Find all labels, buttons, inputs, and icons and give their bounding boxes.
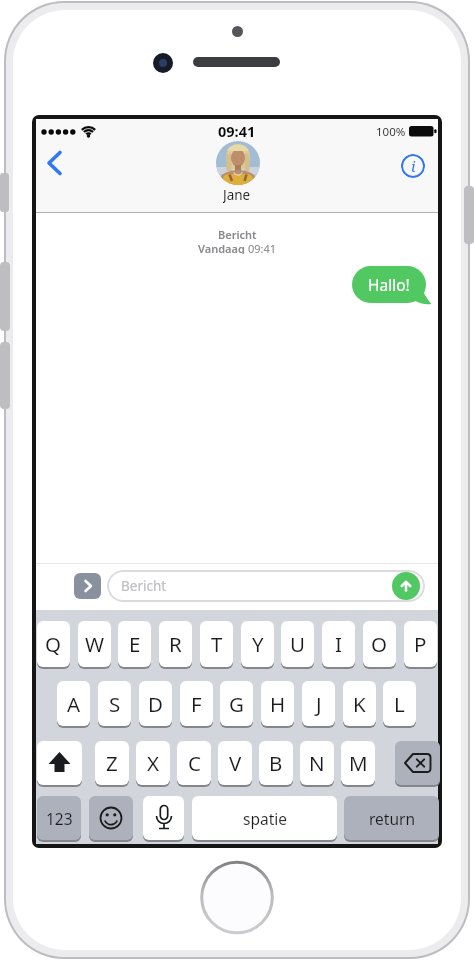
staticText: O <box>371 630 388 658</box>
staticText: U <box>290 630 305 658</box>
button[interactable]: T <box>200 621 233 667</box>
staticText: A <box>67 690 81 718</box>
button[interactable]: P <box>404 621 437 667</box>
staticText: Jane <box>223 186 251 203</box>
staticText: D <box>148 690 163 718</box>
button[interactable]: D <box>139 681 172 726</box>
button[interactable]: N <box>300 741 334 785</box>
staticText: E <box>129 630 141 658</box>
button[interactable]: i <box>401 154 425 178</box>
button[interactable]: M <box>341 741 375 785</box>
staticText: Hallo! <box>368 274 410 295</box>
button[interactable]: G <box>220 681 253 726</box>
staticText: Bericht <box>218 227 257 240</box>
button[interactable]: K <box>343 681 376 726</box>
button[interactable]: H <box>261 681 294 726</box>
staticText: B <box>269 749 283 777</box>
button[interactable] <box>37 741 82 785</box>
staticText: 09:41 <box>248 241 277 254</box>
button[interactable]: Q <box>37 621 70 667</box>
staticText: C <box>188 749 201 777</box>
staticText: 09:41 <box>218 121 256 138</box>
button[interactable] <box>89 796 133 840</box>
button[interactable]: 123 <box>37 796 81 840</box>
button[interactable]: A <box>57 681 90 726</box>
staticText: L <box>394 690 405 718</box>
button[interactable]: I <box>322 621 355 667</box>
staticText: T <box>211 630 223 658</box>
staticText: S <box>109 690 121 718</box>
button[interactable]: return <box>344 796 439 840</box>
staticText: return <box>369 808 415 829</box>
staticText: R <box>169 630 182 658</box>
staticText: N <box>309 749 325 777</box>
staticText: spatie <box>243 808 287 829</box>
staticText: J <box>316 690 322 718</box>
button[interactable]: R <box>159 621 192 667</box>
button[interactable]: F <box>180 681 213 726</box>
staticText: 123 <box>46 808 73 829</box>
staticText: F <box>191 690 202 718</box>
staticText: i <box>411 156 416 176</box>
button[interactable] <box>40 146 68 180</box>
staticText: V <box>229 749 242 777</box>
staticText: Z <box>106 749 118 777</box>
button[interactable]: B <box>259 741 293 785</box>
staticText: I <box>335 630 342 658</box>
staticText: P <box>414 630 427 658</box>
button[interactable]: V <box>218 741 252 785</box>
staticText: M <box>349 749 368 777</box>
button[interactable]: U <box>281 621 314 667</box>
staticText: Q <box>45 630 62 658</box>
button[interactable]: Hallo! <box>352 266 426 303</box>
button[interactable]: W <box>78 621 111 667</box>
staticText: K <box>353 690 366 718</box>
button[interactable] <box>143 796 184 840</box>
button[interactable]: O <box>363 621 396 667</box>
button[interactable]: E <box>118 621 151 667</box>
button[interactable]: Y <box>241 621 274 667</box>
staticText: H <box>270 690 286 718</box>
staticText: X <box>147 749 160 777</box>
staticText: G <box>229 690 244 718</box>
button[interactable]: S <box>98 681 131 726</box>
button[interactable]: C <box>177 741 211 785</box>
button[interactable] <box>216 141 260 185</box>
button[interactable]: L <box>383 681 416 726</box>
staticText: Vandaag <box>198 241 248 254</box>
staticText: Bericht <box>121 577 167 595</box>
button[interactable]: Bericht <box>107 570 425 602</box>
button[interactable] <box>395 741 440 785</box>
staticText: W <box>85 630 105 658</box>
button[interactable] <box>392 572 420 600</box>
button[interactable]: J <box>302 681 335 726</box>
button[interactable]: spatie <box>192 796 337 840</box>
staticText: 100% <box>376 124 406 138</box>
button[interactable]: X <box>136 741 170 785</box>
button[interactable]: Z <box>95 741 129 785</box>
staticText: Y <box>252 630 264 658</box>
button[interactable] <box>74 573 101 599</box>
